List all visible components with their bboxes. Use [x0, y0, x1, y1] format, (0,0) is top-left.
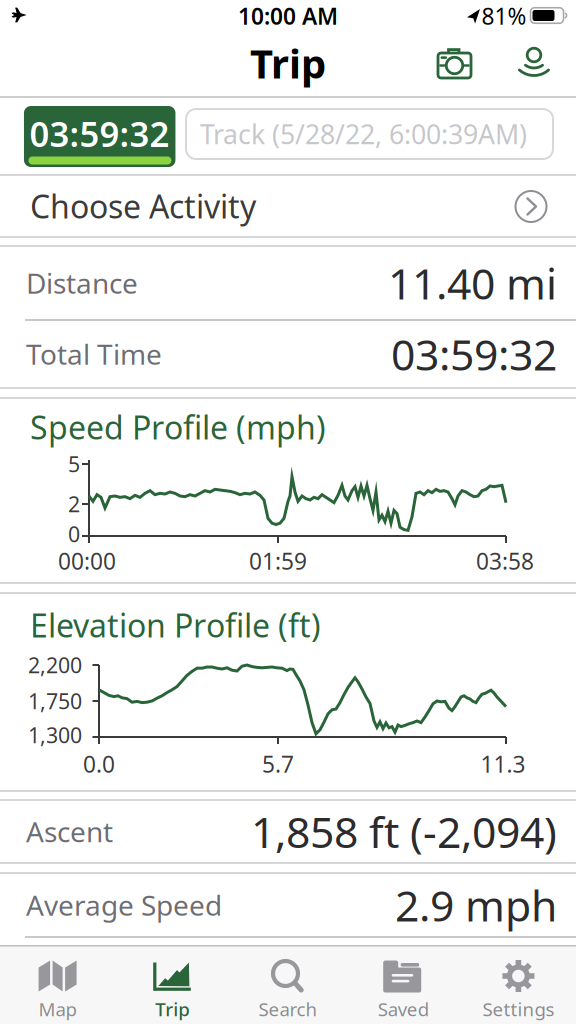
staticText: 10:00 AM	[238, 1, 338, 31]
staticText: Map	[39, 997, 77, 1021]
button[interactable]: Camera	[437, 48, 472, 80]
staticText: Average Speed	[26, 886, 222, 924]
button[interactable]: Choose Activity	[0, 175, 576, 237]
staticText: Trip	[155, 997, 190, 1021]
button[interactable]: Record track	[517, 46, 551, 78]
button[interactable]: Track (5/28/22, 6:00:39AM)	[186, 109, 553, 159]
staticText: 0.0	[83, 749, 115, 779]
staticText: Settings	[482, 997, 554, 1021]
staticText: 01:59	[249, 546, 307, 576]
staticText: Speed Profile (mph)	[30, 406, 326, 448]
staticText: 11.3	[480, 749, 525, 779]
staticText: 1,750	[28, 687, 82, 715]
staticText: 00:00	[58, 546, 116, 576]
staticText: 5.7	[262, 749, 294, 779]
staticText: Elevation Profile (ft)	[30, 604, 321, 646]
staticText: Ascent	[26, 813, 113, 850]
button[interactable]: Search	[230, 945, 346, 1024]
button[interactable]: Saved	[346, 945, 461, 1024]
staticText: Distance	[26, 264, 138, 302]
staticText: Search	[258, 997, 317, 1021]
button[interactable]: Map	[0, 945, 115, 1024]
staticText: 2,200	[28, 651, 82, 679]
staticText: 03:59:32	[391, 326, 557, 382]
staticText: 03:59:32	[29, 110, 169, 156]
staticText: Saved	[378, 997, 429, 1021]
button[interactable]: Settings	[461, 945, 576, 1024]
staticText: 0	[68, 520, 80, 548]
staticText: Track (5/28/22, 6:00:39AM)	[200, 116, 527, 152]
staticText: 81%	[481, 1, 526, 31]
staticText: Trip	[250, 36, 326, 89]
button[interactable]: 03:59:32	[24, 106, 175, 167]
staticText: Choose Activity	[30, 185, 256, 227]
staticText: Total Time	[26, 335, 162, 373]
staticText: 1,858 ft (-2,094)	[251, 803, 557, 860]
staticText: 5	[68, 450, 80, 478]
staticText: 03:58	[476, 546, 534, 576]
button[interactable]: Trip	[115, 945, 230, 1024]
staticText: 2	[68, 490, 80, 518]
staticText: 2.9 mph	[395, 877, 557, 933]
staticText: 1,300	[28, 721, 82, 749]
staticText: 11.40 mi	[388, 255, 557, 311]
